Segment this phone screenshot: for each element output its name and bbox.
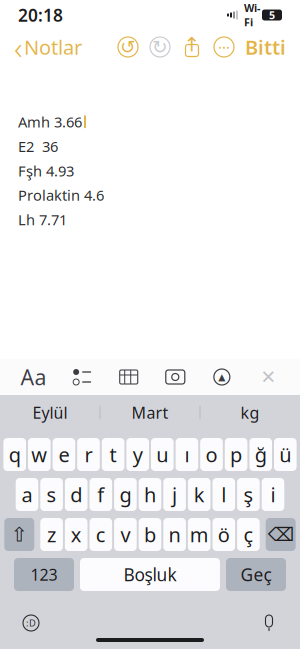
button[interactable]: Table: [114, 360, 144, 394]
button[interactable]: c: [89, 518, 112, 551]
button[interactable]: ğ: [249, 438, 272, 471]
staticText: 20:18: [18, 3, 63, 26]
button[interactable]: u: [151, 438, 174, 471]
staticText: ↺: [120, 36, 136, 58]
button[interactable]: Undo: [117, 36, 139, 58]
button[interactable]: z: [40, 518, 63, 551]
staticText: ↻: [152, 36, 168, 58]
staticText: p: [230, 441, 242, 468]
staticText: ⇧: [11, 523, 28, 546]
button[interactable]: ü: [274, 438, 297, 471]
staticText: x: [71, 521, 82, 548]
button[interactable]: Boşluk: [80, 558, 220, 591]
staticText: WiFi: [244, 1, 260, 29]
button[interactable]: j: [163, 478, 186, 511]
staticText: n: [169, 521, 181, 548]
staticText: e: [58, 441, 69, 468]
button[interactable]: f: [89, 478, 112, 511]
button[interactable]: Eylül: [0, 395, 99, 430]
staticText: E2 36: [18, 136, 58, 156]
button[interactable]: r: [77, 438, 100, 471]
staticText: a: [21, 481, 32, 508]
staticText: j: [172, 481, 177, 508]
button[interactable]: Checklist: [67, 360, 97, 394]
button[interactable]: Delete: [266, 518, 296, 551]
staticText: w: [31, 441, 47, 468]
button[interactable]: t: [102, 438, 124, 471]
staticText: kg: [240, 402, 259, 423]
staticText: ş: [243, 481, 253, 508]
button[interactable]: Share: [181, 36, 203, 58]
button[interactable]: Bitti: [243, 34, 288, 60]
staticText: ü: [279, 441, 291, 468]
staticText: 123: [30, 564, 57, 585]
button[interactable]: ş: [237, 478, 260, 511]
button[interactable]: e: [53, 438, 75, 471]
button[interactable]: Camera: [160, 360, 190, 394]
staticText: ↑: [183, 33, 200, 56]
button[interactable]: o: [200, 438, 223, 471]
button[interactable]: More: [213, 36, 235, 58]
staticText: y: [133, 441, 143, 468]
staticText: m: [190, 521, 209, 548]
button[interactable]: Mart: [100, 395, 199, 430]
button[interactable]: Close toolbar: [253, 360, 283, 394]
staticText: v: [120, 521, 130, 548]
button[interactable]: a: [16, 478, 38, 511]
staticText: h: [144, 481, 156, 508]
button[interactable]: q: [3, 438, 26, 471]
staticText: Aa: [21, 363, 47, 391]
staticText: ı: [184, 441, 189, 468]
button[interactable]: g: [114, 478, 137, 511]
staticText: z: [47, 521, 56, 548]
button[interactable]: 123: [14, 558, 74, 591]
button[interactable]: s: [40, 478, 63, 511]
button[interactable]: ö: [212, 518, 235, 551]
staticText: ğ: [255, 441, 267, 468]
staticText: Bitti: [245, 34, 286, 60]
staticText: o: [205, 441, 217, 468]
staticText: c: [96, 521, 106, 548]
button[interactable]: b: [139, 518, 161, 551]
button[interactable]: d: [65, 478, 87, 511]
button[interactable]: Text format: [17, 360, 51, 394]
staticText: k: [194, 481, 205, 508]
button[interactable]: v: [114, 518, 137, 551]
staticText: ▲: [218, 372, 225, 382]
staticText: l: [221, 481, 226, 508]
staticText: Mart: [131, 402, 168, 423]
button[interactable]: Shift: [4, 518, 34, 551]
button[interactable]: m: [188, 518, 210, 551]
staticText: Geç: [240, 563, 271, 586]
staticText: r: [84, 441, 92, 468]
button[interactable]: ‹: [12, 26, 84, 68]
button[interactable]: ç: [237, 518, 260, 551]
staticText: Eylül: [32, 402, 67, 423]
button[interactable]: w: [28, 438, 51, 471]
staticText: ç: [243, 521, 253, 548]
button[interactable]: l: [212, 478, 235, 511]
button[interactable]: Geç: [226, 558, 286, 591]
button[interactable]: h: [139, 478, 161, 511]
button[interactable]: Markup: [207, 360, 237, 394]
staticText: f: [97, 481, 104, 508]
button[interactable]: x: [65, 518, 87, 551]
button[interactable]: p: [225, 438, 247, 471]
staticText: u: [156, 441, 168, 468]
button[interactable]: Redo: [149, 36, 171, 58]
button[interactable]: Emoji: [14, 606, 48, 640]
staticText: ‹: [14, 26, 22, 68]
staticText: ···: [218, 37, 230, 57]
button[interactable]: i: [262, 478, 284, 511]
staticText: t: [110, 441, 117, 468]
staticText: ⌫: [268, 524, 294, 545]
button[interactable]: kg: [200, 395, 299, 430]
button[interactable]: y: [126, 438, 149, 471]
button[interactable]: k: [188, 478, 210, 511]
button[interactable]: ı: [176, 438, 198, 471]
button[interactable]: n: [163, 518, 186, 551]
staticText: i: [270, 481, 275, 508]
staticText: d: [70, 481, 82, 508]
button[interactable]: Dictation: [252, 606, 286, 640]
